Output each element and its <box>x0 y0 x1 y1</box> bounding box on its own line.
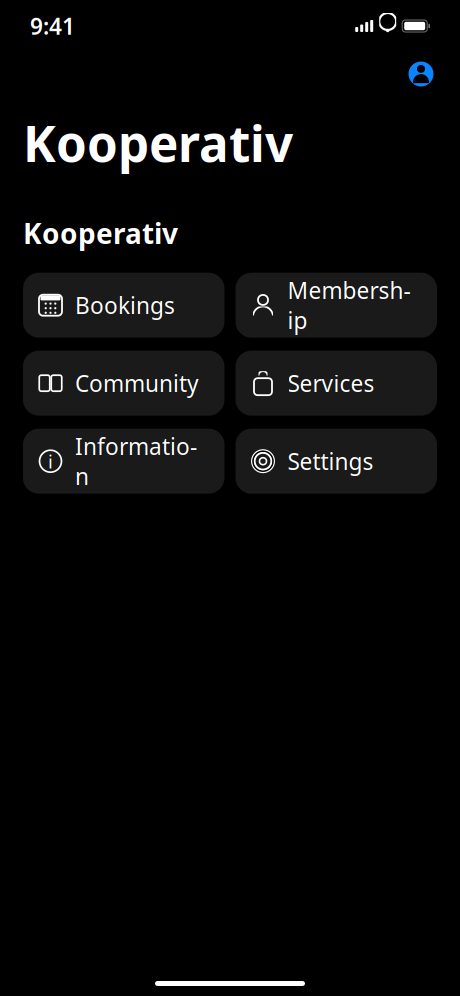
staticText: Information <box>75 431 197 491</box>
staticText: Services <box>287 368 374 398</box>
button[interactable]: Membership <box>235 273 437 338</box>
button[interactable]: Community <box>23 351 224 416</box>
staticText: Community <box>75 368 199 398</box>
staticText: Settings <box>287 446 373 476</box>
button[interactable]: i <box>23 429 224 494</box>
staticText: Kooperativ <box>23 214 178 252</box>
button[interactable]: Profile <box>399 52 443 96</box>
staticText: Bookings <box>75 290 175 320</box>
staticText: 9:41 <box>30 11 75 41</box>
staticText: Membership <box>287 275 410 335</box>
button[interactable]: Services <box>235 351 437 416</box>
staticText: Kooperativ <box>23 110 293 175</box>
button[interactable]: Settings <box>235 429 437 494</box>
staticText: i <box>48 449 53 474</box>
button[interactable]: Bookings <box>23 273 224 338</box>
